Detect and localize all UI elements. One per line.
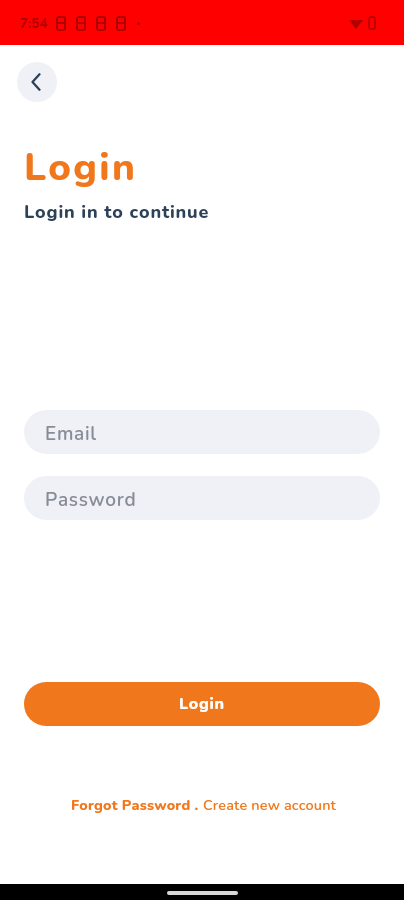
staticText: Email bbox=[45, 421, 97, 447]
button[interactable]: Password bbox=[24, 476, 380, 520]
staticText: Create new account bbox=[199, 795, 337, 815]
staticText: Password bbox=[45, 487, 137, 513]
staticText: Forgot Password . bbox=[71, 795, 199, 815]
button[interactable]: Back bbox=[17, 62, 57, 102]
button[interactable]: Create new account bbox=[199, 789, 337, 821]
button[interactable]: Forgot Password . bbox=[71, 789, 199, 821]
staticText: Login in to continue bbox=[24, 200, 210, 225]
staticText: Login bbox=[179, 693, 225, 715]
button[interactable]: Email bbox=[24, 410, 380, 454]
staticText: Login bbox=[24, 141, 138, 194]
button[interactable]: Login bbox=[24, 682, 380, 726]
staticText: 7:54 bbox=[20, 14, 48, 32]
